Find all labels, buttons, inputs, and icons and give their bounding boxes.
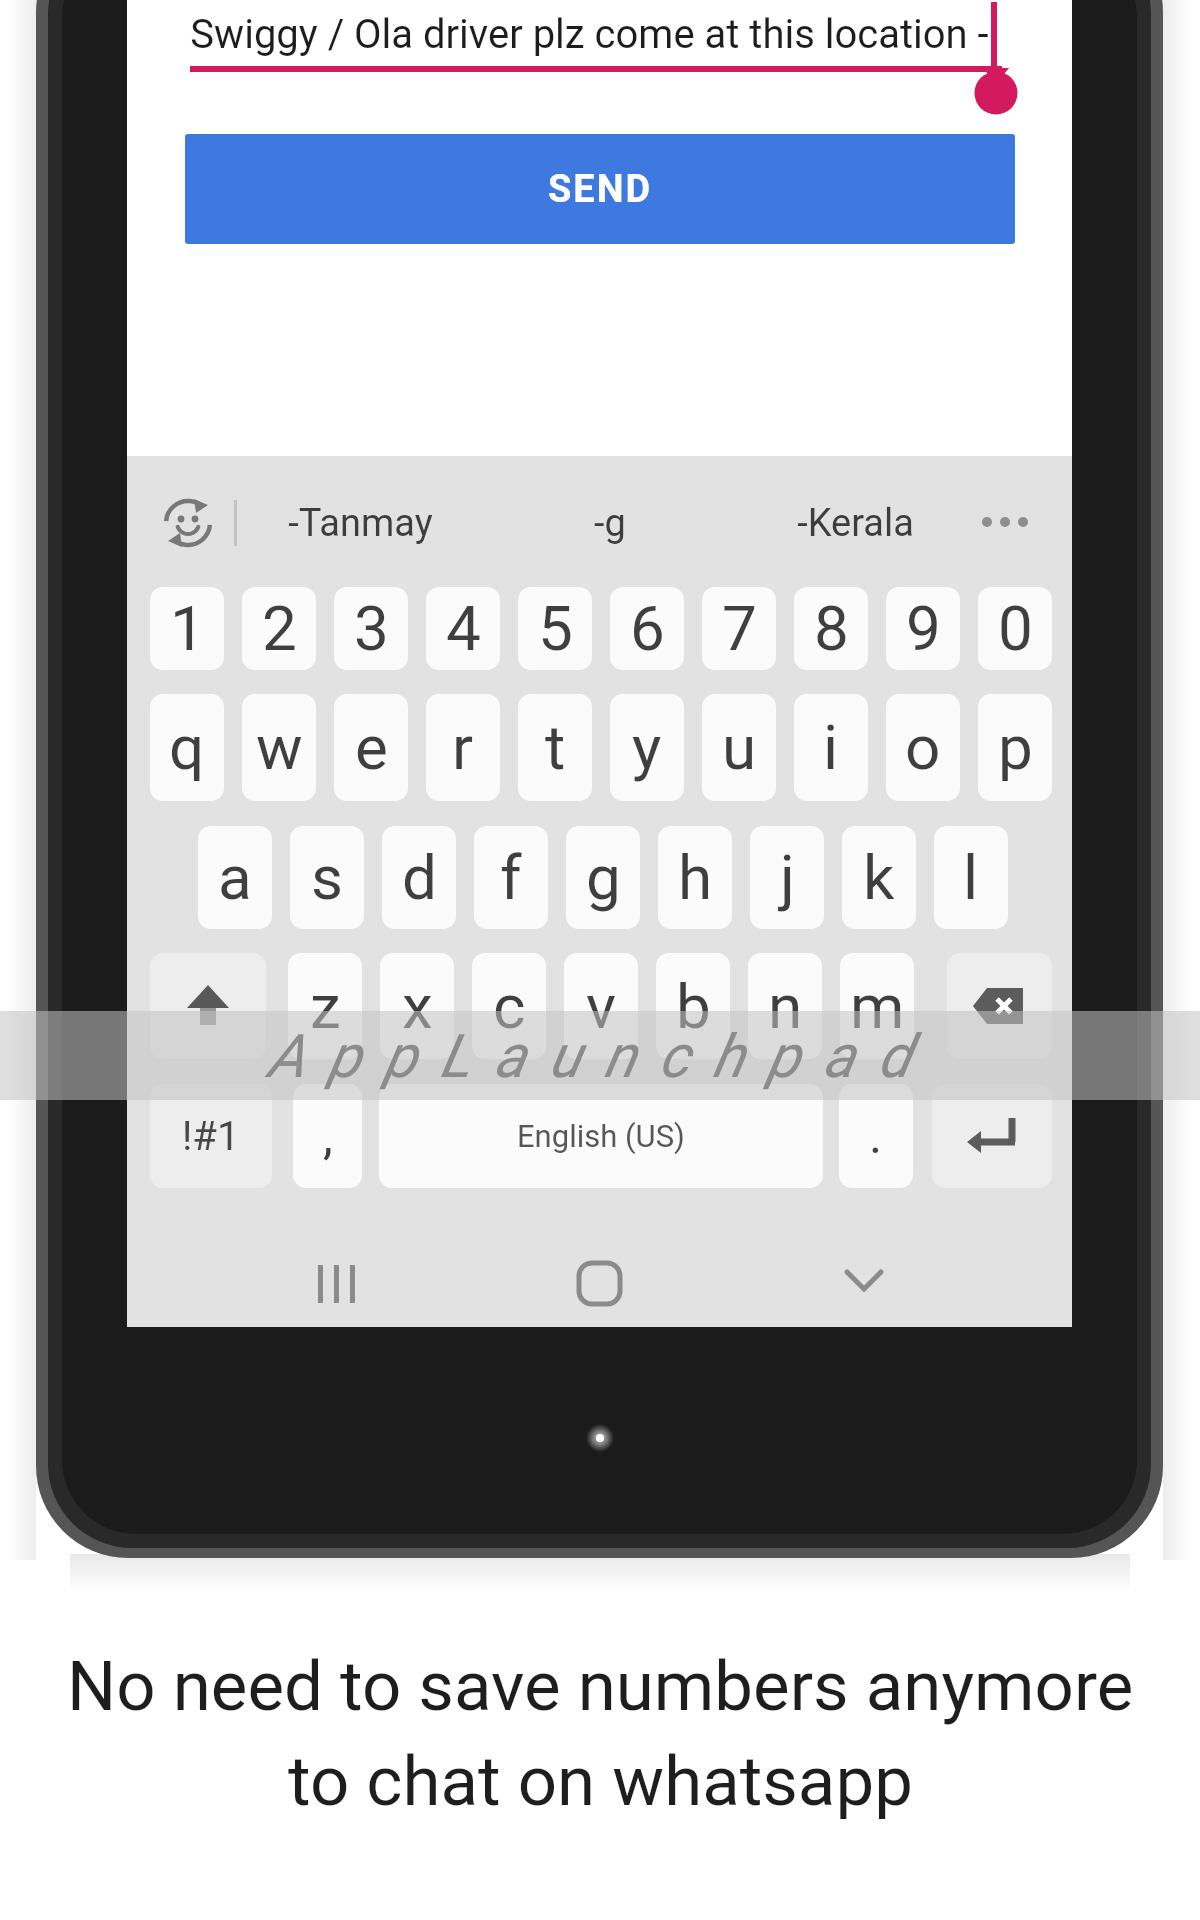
button[interactable]: a [198,826,272,929]
staticText: 3 [354,592,389,665]
button[interactable]: . [839,1084,913,1188]
button[interactable]: x [380,953,454,1059]
staticText: h [678,841,713,914]
button[interactable]: 4 [426,587,500,670]
button[interactable]: o [886,694,960,801]
staticText: v [586,970,617,1043]
staticText: b [676,970,711,1043]
button[interactable]: y [610,694,684,801]
button[interactable]: 1 [150,587,224,670]
button[interactable]: 5 [518,587,592,670]
button[interactable] [932,1084,1052,1188]
staticText: i [823,711,839,784]
staticText: w [256,711,303,784]
staticText: 2 [262,592,297,665]
staticText: o [905,711,941,784]
staticText: 4 [446,592,481,665]
button[interactable]: d [382,826,456,929]
button[interactable]: z [288,953,362,1059]
staticText: m [850,970,905,1043]
staticText: e [355,711,388,784]
staticText: f [500,841,522,914]
button[interactable]: 8 [794,587,868,670]
staticText: English (US) [517,1118,685,1154]
button[interactable]: s [290,826,364,929]
button[interactable]: SEND [185,134,1015,244]
button[interactable]: j [750,826,824,929]
staticText: AppLaunchpad [267,1021,934,1091]
staticText: 0 [998,592,1033,665]
button[interactable] [300,1250,380,1320]
staticText: z [310,970,341,1043]
staticText: q [169,711,205,784]
button[interactable]: m [840,953,914,1059]
staticText: r [452,711,474,784]
button[interactable]: p [978,694,1052,801]
button[interactable] [164,499,212,547]
button[interactable]: e [334,694,408,801]
button[interactable]: g [566,826,640,929]
staticText: l [963,841,979,914]
button[interactable]: h [658,826,732,929]
button[interactable]: w [242,694,316,801]
button[interactable] [830,1250,910,1320]
staticText: . [869,1107,883,1166]
staticText: Swiggy / Ola driver plz come at this loc… [190,11,989,58]
button[interactable] [975,510,1035,534]
button[interactable]: 3 [334,587,408,670]
staticText: -Tanmay [288,501,433,546]
button[interactable]: c [472,953,546,1059]
staticText: , [323,1107,333,1166]
button[interactable]: , [293,1084,362,1188]
button[interactable] [150,953,266,1059]
staticText: p [998,711,1033,784]
button[interactable]: !#1 [150,1084,272,1188]
staticText: SEND [548,167,653,212]
button[interactable]: 7 [702,587,776,670]
button[interactable]: f [474,826,548,929]
button[interactable]: English (US) [379,1084,823,1188]
button[interactable]: 6 [610,587,684,670]
staticText: 7 [722,592,757,665]
button[interactable]: l [934,826,1008,929]
staticText: -Kerala [797,501,914,546]
staticText: to chat on whatsapp [288,1741,913,1822]
button[interactable]: 2 [242,587,316,670]
staticText: u [722,711,757,784]
staticText: !#1 [182,1113,240,1160]
button[interactable]: q [150,694,224,801]
button[interactable]: t [518,694,592,801]
staticText: 5 [538,592,573,665]
button[interactable] [947,953,1052,1059]
button[interactable]: b [656,953,730,1059]
staticText: x [402,970,433,1043]
staticText: y [632,711,662,784]
button[interactable]: u [702,694,776,801]
button[interactable]: i [794,694,868,801]
staticText: c [493,970,526,1043]
staticText: d [402,841,437,914]
staticText: 8 [814,592,849,665]
staticText: a [218,841,252,914]
staticText: j [780,841,795,914]
button[interactable]: 9 [886,587,960,670]
button[interactable]: n [748,953,822,1059]
staticText: 6 [630,592,665,665]
staticText: -g [594,501,626,546]
staticText: g [586,841,621,914]
staticText: n [768,970,803,1043]
button[interactable]: 0 [978,587,1052,670]
button[interactable] [570,1250,640,1320]
staticText: 9 [906,592,941,665]
staticText: t [545,711,566,784]
staticText: k [863,841,895,914]
button[interactable]: v [564,953,638,1059]
button[interactable]: k [842,826,916,929]
staticText: 1 [170,592,205,665]
staticText: No need to save numbers anymore [67,1646,1134,1727]
staticText: s [311,841,343,914]
button[interactable]: r [426,694,500,801]
